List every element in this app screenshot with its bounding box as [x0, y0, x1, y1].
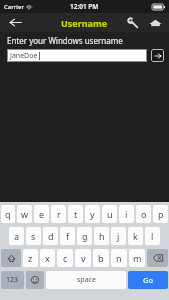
- button[interactable]: Emoji: [26, 271, 44, 289]
- button[interactable]: y: [85, 205, 100, 223]
- staticText: q: [5, 208, 11, 220]
- staticText: space: [77, 275, 96, 285]
- staticText: g: [82, 230, 88, 242]
- staticText: Go: [143, 275, 153, 285]
- staticText: k: [133, 230, 138, 242]
- staticText: v: [81, 252, 86, 264]
- button[interactable]: w: [17, 205, 32, 223]
- button[interactable]: v: [75, 249, 91, 267]
- staticText: t: [74, 208, 78, 220]
- button[interactable]: b: [93, 249, 109, 267]
- button[interactable]: q: [1, 205, 15, 223]
- staticText: Carrier: [4, 3, 24, 11]
- button[interactable]: 123: [1, 271, 24, 289]
- button[interactable]: l: [145, 227, 160, 245]
- staticText: Enter your Windows username: [7, 35, 123, 46]
- staticText: h: [99, 230, 105, 242]
- button[interactable]: f: [60, 227, 75, 245]
- staticText: s: [31, 230, 36, 242]
- staticText: m: [133, 252, 142, 264]
- staticText: w: [21, 208, 29, 220]
- button[interactable]: g: [77, 227, 92, 245]
- button[interactable]: o: [136, 205, 151, 223]
- staticText: 12:01 PM: [70, 2, 99, 11]
- button[interactable]: Home: [144, 13, 167, 32]
- staticText: f: [66, 230, 70, 242]
- button[interactable]: h: [94, 227, 109, 245]
- button[interactable]: j: [111, 227, 126, 245]
- button[interactable]: n: [111, 249, 127, 267]
- staticText: 123: [6, 275, 19, 285]
- staticText: r: [57, 208, 61, 220]
- button[interactable]: r: [51, 205, 66, 223]
- button[interactable]: m: [129, 249, 145, 267]
- button[interactable]: a: [9, 227, 24, 245]
- button[interactable]: i: [119, 205, 134, 223]
- button[interactable]: Shift: [1, 249, 21, 267]
- button[interactable]: s: [26, 227, 41, 245]
- button[interactable]: Settings: [121, 13, 144, 32]
- staticText: d: [48, 230, 54, 242]
- staticText: i: [125, 208, 128, 220]
- staticText: z: [28, 252, 33, 264]
- button[interactable]: d: [43, 227, 58, 245]
- button[interactable]: z: [23, 249, 38, 267]
- button[interactable]: t: [68, 205, 83, 223]
- staticText: c: [63, 252, 68, 264]
- staticText: JaneDoe: [10, 51, 38, 61]
- button[interactable]: k: [128, 227, 143, 245]
- staticText: Username: [61, 17, 108, 29]
- staticText: y: [90, 208, 95, 220]
- button[interactable]: space: [46, 271, 126, 289]
- button[interactable]: p: [153, 205, 168, 223]
- button[interactable]: u: [102, 205, 117, 223]
- button[interactable]: Submit: [151, 49, 164, 62]
- staticText: l: [151, 230, 154, 242]
- staticText: u: [107, 208, 113, 220]
- button[interactable]: x: [40, 249, 55, 267]
- staticText: j: [117, 230, 120, 242]
- staticText: p: [158, 208, 164, 220]
- staticText: x: [45, 252, 50, 264]
- button[interactable]: Back: [0, 13, 30, 32]
- staticText: a: [14, 230, 20, 242]
- button[interactable]: Backspace: [147, 249, 168, 267]
- button[interactable]: c: [57, 249, 73, 267]
- button[interactable]: e: [34, 205, 49, 223]
- staticText: b: [98, 252, 104, 264]
- staticText: n: [116, 252, 122, 264]
- staticText: e: [39, 208, 45, 220]
- staticText: o: [141, 208, 147, 220]
- button[interactable]: Go: [128, 271, 168, 289]
- button[interactable]: JaneDoe: [7, 49, 147, 62]
